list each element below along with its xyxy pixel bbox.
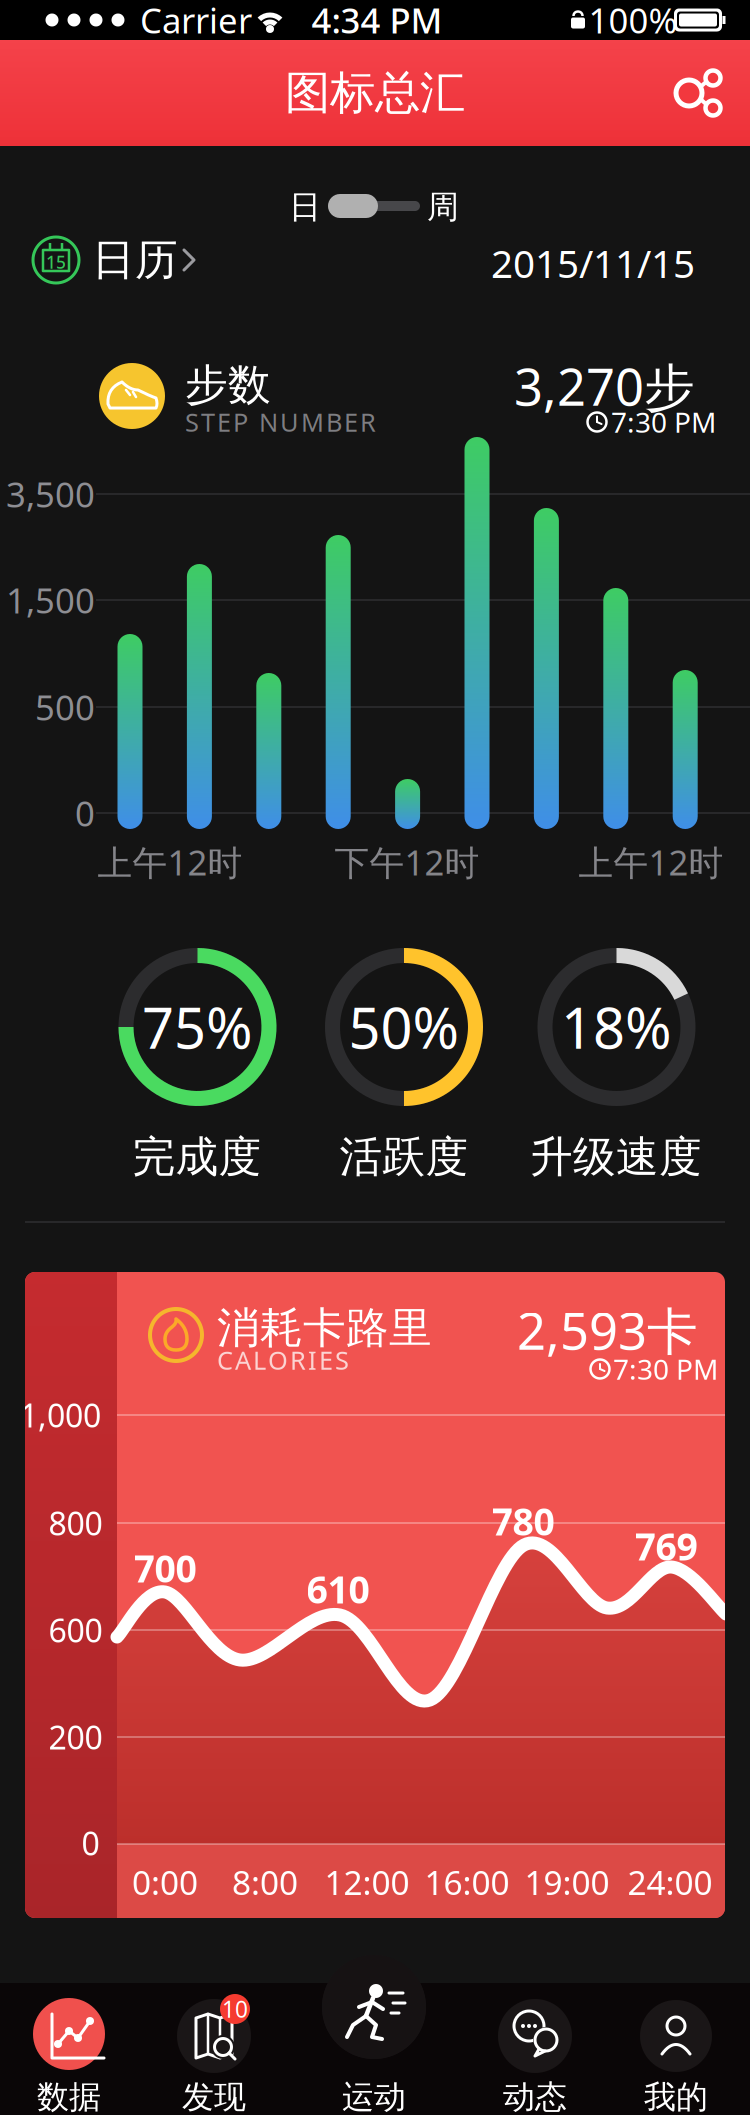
staticText: 10	[222, 1994, 248, 2024]
staticText: 780	[491, 1496, 554, 1546]
staticText: 200	[48, 1716, 102, 1758]
staticText: 16:00	[424, 1860, 509, 1904]
staticText: 8:00	[232, 1860, 298, 1904]
staticText: 上午12时	[578, 839, 723, 885]
button[interactable]: 15	[33, 233, 203, 289]
staticText: 我的	[644, 2077, 708, 2115]
staticText: 数据	[37, 2077, 101, 2115]
staticText: 12:00	[324, 1860, 409, 1904]
button[interactable]: 我的	[621, 1983, 731, 2107]
staticText: 700	[133, 1543, 196, 1593]
staticText: 100%	[588, 0, 677, 43]
staticText: CALORIES	[217, 1343, 349, 1377]
staticText: 图标总汇	[285, 65, 465, 121]
staticText: 下午12时	[334, 839, 479, 885]
button[interactable]: 动态	[480, 1983, 590, 2107]
button[interactable]: 10	[159, 1983, 269, 2107]
staticText: 3,500	[6, 471, 95, 517]
staticText: 19:00	[524, 1860, 609, 1904]
staticText: 24:00	[627, 1860, 712, 1904]
button[interactable]: 数据	[14, 1983, 124, 2107]
staticText: 0:00	[132, 1860, 198, 1904]
staticText: 769	[634, 1521, 697, 1571]
staticText: 800	[48, 1502, 102, 1544]
staticText: 活跃度	[339, 1131, 468, 1183]
staticText: 0	[75, 790, 95, 836]
staticText: 50%	[348, 990, 459, 1064]
staticText: 日历	[92, 234, 178, 286]
staticText: 消耗卡路里	[217, 1302, 432, 1354]
staticText: 步数	[185, 359, 271, 411]
staticText: 0	[81, 1822, 99, 1864]
staticText: 7:30 PM	[613, 1350, 718, 1388]
staticText: 75%	[142, 990, 253, 1064]
staticText: 发现	[182, 2077, 246, 2115]
staticText: 2,593卡	[517, 1296, 698, 1364]
staticText: 1,000	[20, 1394, 101, 1436]
button[interactable]	[653, 53, 733, 133]
staticText: 1,500	[6, 577, 95, 623]
staticText: 日	[289, 187, 321, 227]
button[interactable]	[327, 193, 421, 219]
staticText: STEP NUMBER	[185, 405, 376, 439]
staticText: 4:34 PM	[311, 0, 442, 43]
staticText: 18%	[561, 990, 672, 1064]
button[interactable]: 运动	[319, 1979, 429, 2107]
staticText: 500	[35, 684, 95, 730]
staticText: 升级速度	[530, 1131, 702, 1183]
staticText: 运动	[342, 2077, 406, 2115]
staticText: 7:30 PM	[611, 403, 716, 441]
staticText: 周	[427, 187, 459, 227]
staticText: 2015/11/15	[491, 237, 695, 289]
staticText: 上午12时	[97, 839, 242, 885]
staticText: 610	[306, 1564, 369, 1614]
staticText: Carrier	[140, 0, 252, 43]
staticText: 15	[46, 250, 66, 273]
staticText: 3,270步	[514, 352, 695, 420]
staticText: 600	[48, 1609, 102, 1651]
staticText: 动态	[503, 2077, 567, 2115]
staticText: 完成度	[132, 1131, 261, 1183]
